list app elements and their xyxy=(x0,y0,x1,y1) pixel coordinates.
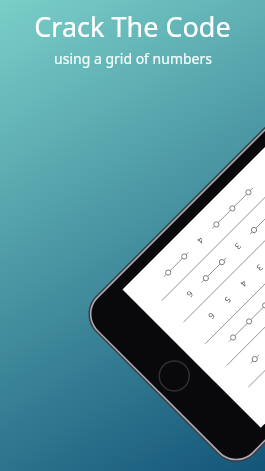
staticText: Crack The Code xyxy=(34,8,231,45)
staticText: using a grid of numbers xyxy=(54,49,212,68)
